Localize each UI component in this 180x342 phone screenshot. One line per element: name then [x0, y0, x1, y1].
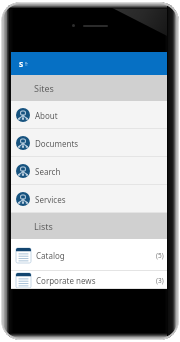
button[interactable]: About [11, 101, 167, 129]
button[interactable]: Catalog [11, 239, 167, 271]
button[interactable]: Documents [11, 129, 167, 157]
button[interactable]: Corporate news [11, 271, 167, 289]
staticText: Lists [34, 220, 53, 232]
staticText: About [35, 110, 58, 121]
staticText: Catalog [36, 250, 65, 261]
staticText: (5) [156, 251, 164, 260]
staticText: Documents [35, 138, 79, 149]
staticText: (3) [156, 276, 164, 285]
staticText: Services [35, 194, 66, 205]
button[interactable]: S [11, 52, 167, 75]
staticText: S [19, 59, 24, 69]
button[interactable]: Services [11, 185, 167, 213]
staticText: Sites [34, 82, 54, 94]
button[interactable]: Search [11, 157, 167, 185]
staticText: Corporate news [36, 275, 96, 286]
staticText: Search [35, 166, 61, 177]
